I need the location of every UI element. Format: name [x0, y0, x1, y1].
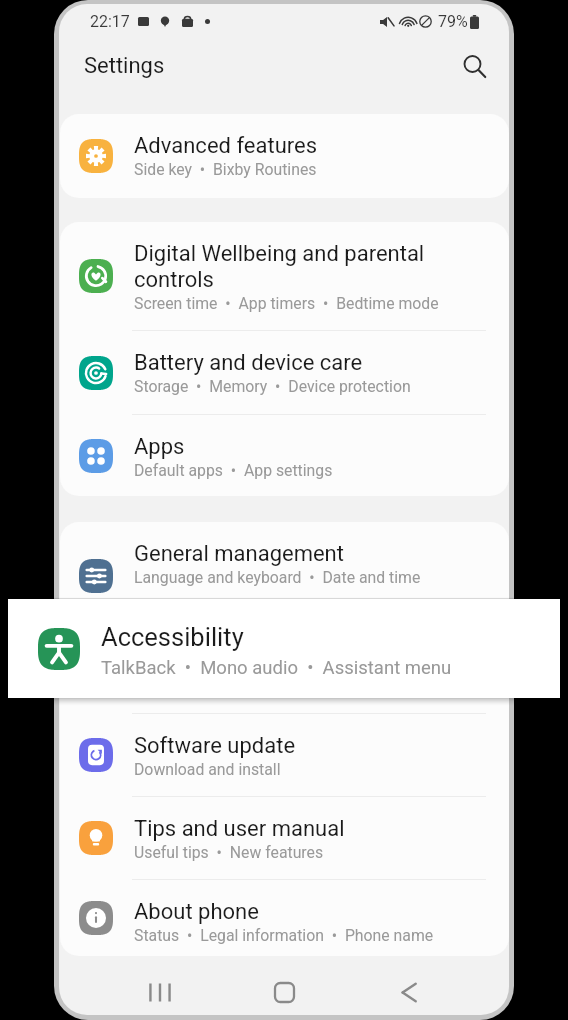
staticText: Status • Legal information • Phone name	[134, 926, 434, 945]
staticText: Digital Wellbeing and parental controls	[134, 241, 425, 293]
button[interactable]: Home	[260, 968, 308, 1015]
staticText: Accessibility	[101, 622, 244, 652]
staticText: 79%	[438, 12, 468, 31]
button[interactable]: Back	[385, 968, 433, 1015]
staticText: Apps	[134, 434, 185, 460]
staticText: 22:17	[90, 12, 130, 31]
staticText: About phone	[134, 899, 259, 925]
staticText: Download and install	[134, 760, 281, 779]
staticText: Storage • Memory • Device protection	[134, 377, 411, 396]
staticText: Settings	[84, 52, 165, 78]
staticText: Default apps • App settings	[134, 461, 333, 480]
button[interactable]: General management	[60, 522, 509, 630]
button[interactable]: Recents	[136, 968, 184, 1015]
staticText: Side key • Bixby Routines	[134, 160, 317, 179]
staticText: Advanced features	[134, 133, 318, 159]
staticText: Battery and device care	[134, 350, 363, 376]
button[interactable]: Accessibility	[60, 631, 509, 713]
staticText: Tips and user manual	[134, 816, 345, 842]
button[interactable]: Search	[455, 47, 493, 85]
button[interactable]: Tips and user manual	[60, 797, 509, 879]
button[interactable]: Software update	[60, 714, 509, 796]
button[interactable]: Digital Wellbeing and parental controls	[60, 222, 509, 330]
staticText: Accessibility	[134, 650, 258, 676]
staticText: General management	[134, 541, 344, 567]
button[interactable]: Apps	[60, 415, 509, 496]
button[interactable]: About phone	[60, 880, 509, 956]
staticText: Screen time • App timers • Bedtime mode	[134, 294, 439, 313]
button[interactable]: Battery and device care	[60, 331, 509, 414]
staticText: Software update	[134, 733, 296, 759]
button[interactable]: Advanced features	[60, 114, 509, 198]
staticText: Language and keyboard • Date and time	[134, 568, 421, 587]
button[interactable]: Accessibility	[8, 599, 560, 698]
staticText: Useful tips • New features	[134, 843, 324, 862]
staticText: TalkBack • Mono audio • Assistant menu	[101, 657, 452, 679]
